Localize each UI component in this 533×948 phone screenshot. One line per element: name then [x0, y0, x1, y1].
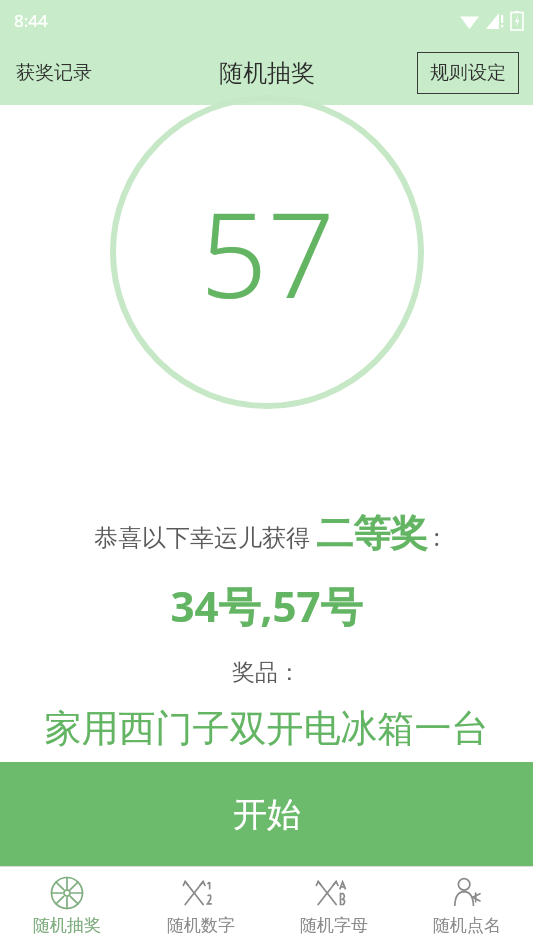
button[interactable]: 随机数字: [134, 867, 267, 948]
staticText: 恭喜以下幸运儿获得 二等奖 :: [94, 510, 440, 557]
staticText: 随机字母: [300, 915, 368, 936]
staticText: 随机抽奖: [33, 915, 101, 936]
button[interactable]: 随机抽奖: [0, 867, 134, 948]
staticText: 34号,57号: [170, 577, 363, 634]
button[interactable]: 开始: [0, 762, 533, 866]
staticText: 家用西门子双开电冰箱一台: [0, 705, 533, 752]
staticText: 获奖记录: [16, 61, 92, 85]
button[interactable]: 随机点名: [400, 867, 533, 948]
button[interactable]: 规则设定: [417, 52, 519, 94]
staticText: 随机数字: [167, 915, 235, 936]
button[interactable]: 获奖记录: [0, 53, 108, 93]
staticText: 随机抽奖: [219, 58, 315, 88]
staticText: 随机点名: [433, 915, 501, 936]
staticText: 8:44: [14, 9, 48, 32]
button[interactable]: 随机字母: [267, 867, 400, 948]
staticText: 奖品：: [232, 658, 301, 687]
staticText: 开始: [233, 793, 301, 836]
staticText: 规则设定: [430, 61, 506, 85]
staticText: 57: [200, 172, 335, 333]
